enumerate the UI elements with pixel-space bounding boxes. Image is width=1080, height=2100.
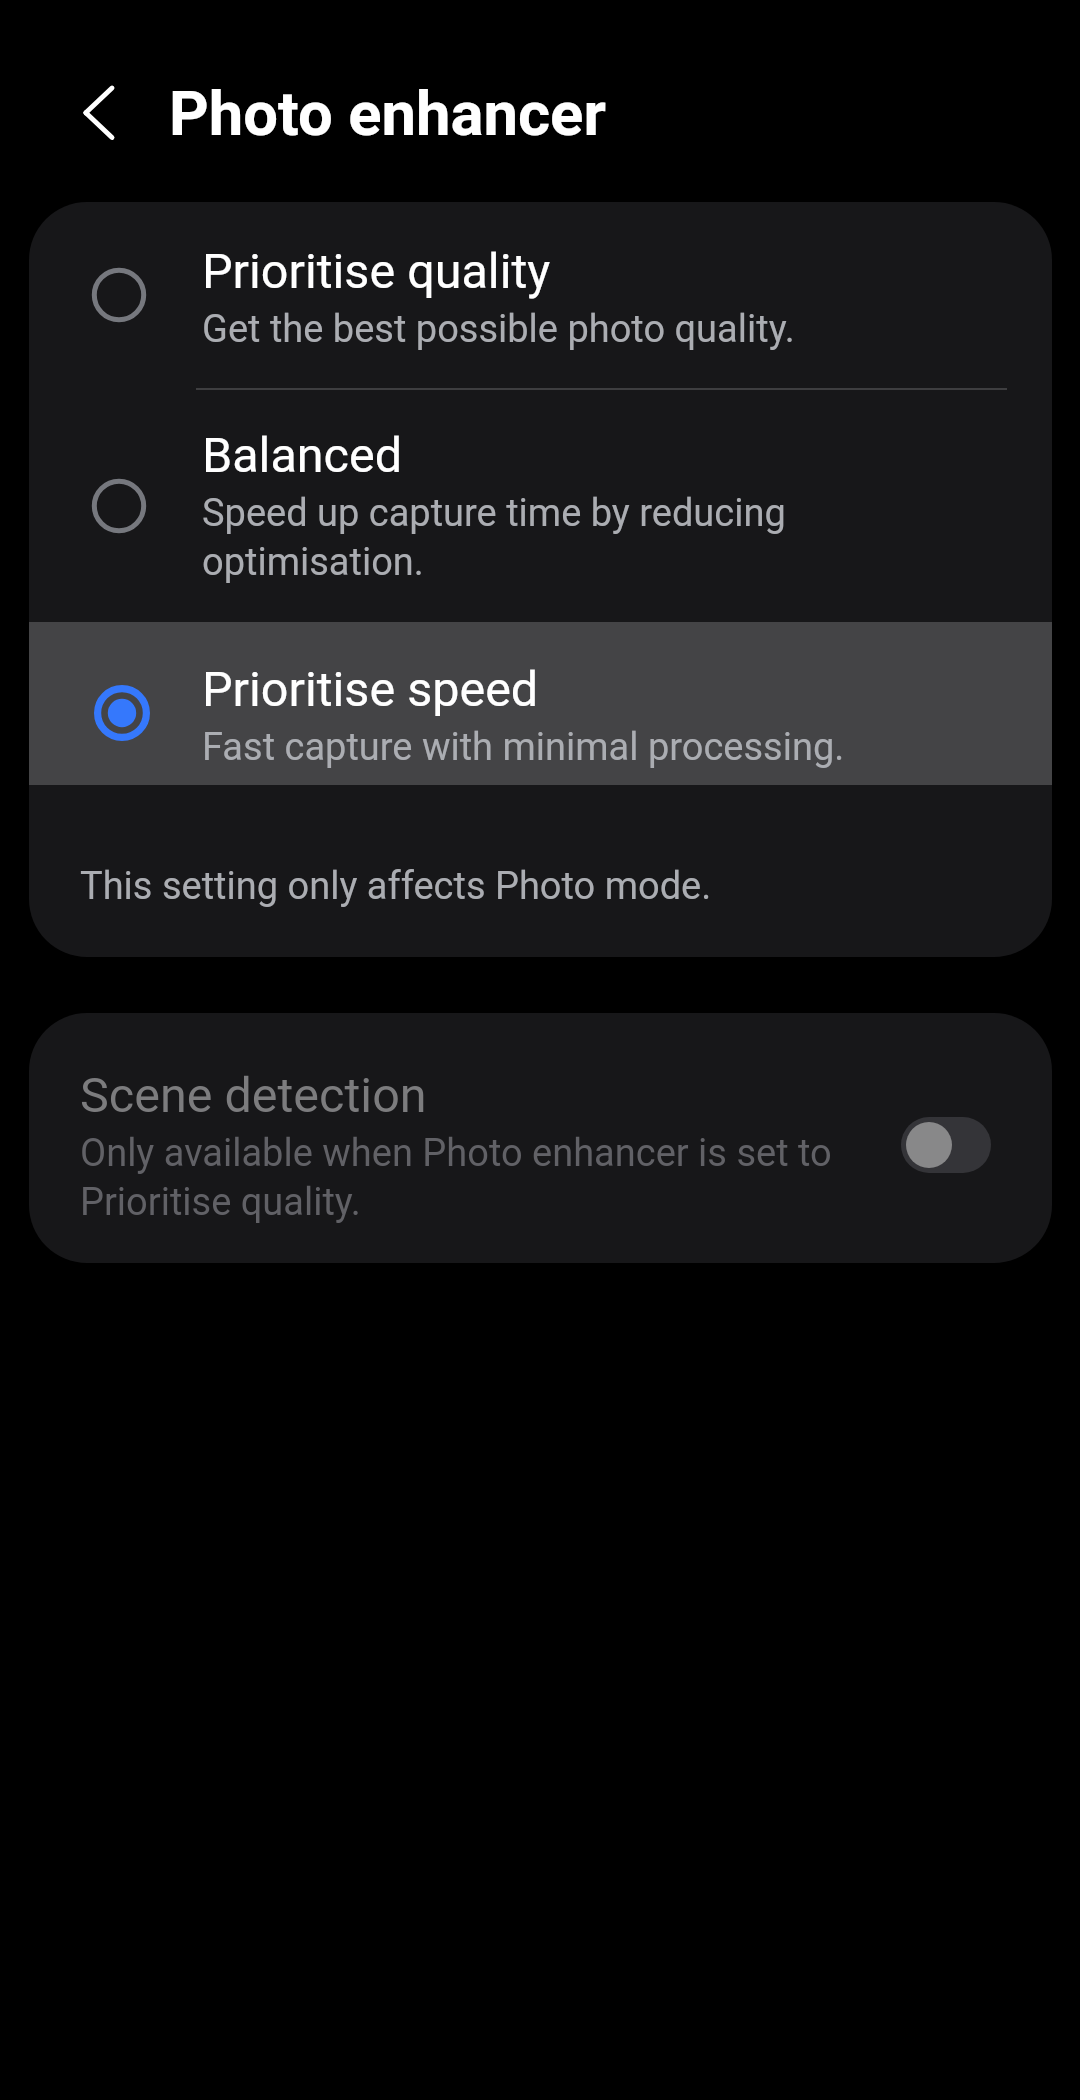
staticText: Speed up capture time by reducing optimi… [202,487,786,585]
button[interactable]: Prioritise quality [29,202,1052,388]
button[interactable]: Balanced [29,390,1052,622]
staticText: Only available when Photo enhancer is se… [80,1127,832,1225]
staticText: This setting only affects Photo mode. [80,860,712,909]
staticText: Fast capture with minimal processing. [202,721,845,770]
button[interactable]: Prioritise speed [29,622,1052,784]
button[interactable]: Navigate up [57,70,143,156]
button[interactable]: Scene detection, off [901,1117,991,1173]
staticText: Prioritise speed [202,650,539,721]
staticText: Photo enhancer [169,72,606,152]
button[interactable]: Scene detection [29,1013,1052,1263]
staticText: Scene detection [80,1056,427,1127]
staticText: Get the best possible photo quality. [202,303,795,352]
staticText: Balanced [202,416,403,487]
staticText: Prioritise quality [202,232,551,303]
